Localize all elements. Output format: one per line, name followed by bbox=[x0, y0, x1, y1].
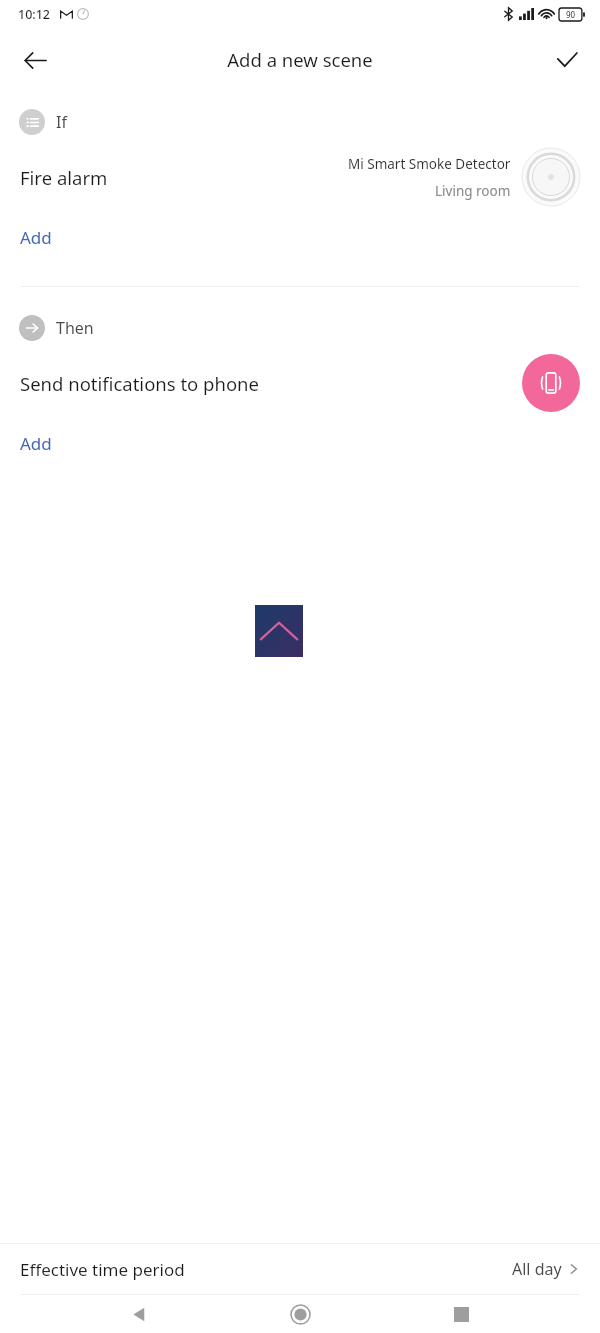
staticText: Mi Smart Smoke Detector bbox=[348, 155, 511, 173]
button[interactable]: Recents bbox=[439, 1295, 483, 1333]
staticText: 90 bbox=[566, 9, 576, 20]
staticText: Add bbox=[20, 432, 52, 455]
staticText: Living room bbox=[435, 182, 511, 200]
staticText: Effective time period bbox=[20, 1258, 185, 1281]
button[interactable]: Effective time period bbox=[0, 1244, 600, 1294]
staticText: Then bbox=[56, 317, 94, 339]
button[interactable]: Add bbox=[20, 213, 72, 261]
staticText: Fire alarm bbox=[20, 165, 108, 190]
staticText: Send notifications to phone bbox=[20, 371, 259, 396]
button[interactable]: Expand overlay bbox=[255, 605, 303, 657]
button[interactable]: Back bbox=[14, 39, 56, 81]
button[interactable]: Home bbox=[278, 1295, 322, 1333]
staticText: All day bbox=[512, 1258, 562, 1280]
staticText: Add a new scene bbox=[227, 47, 373, 72]
staticText: 10:12 bbox=[18, 6, 51, 23]
staticText: If bbox=[56, 111, 67, 133]
button[interactable]: Confirm bbox=[546, 39, 588, 81]
staticText: Add bbox=[20, 226, 52, 249]
button[interactable]: Fire alarm bbox=[0, 141, 600, 213]
button[interactable]: Send notifications to phone bbox=[0, 347, 600, 419]
button[interactable]: Add bbox=[20, 419, 72, 467]
button[interactable]: Back bbox=[117, 1295, 161, 1333]
